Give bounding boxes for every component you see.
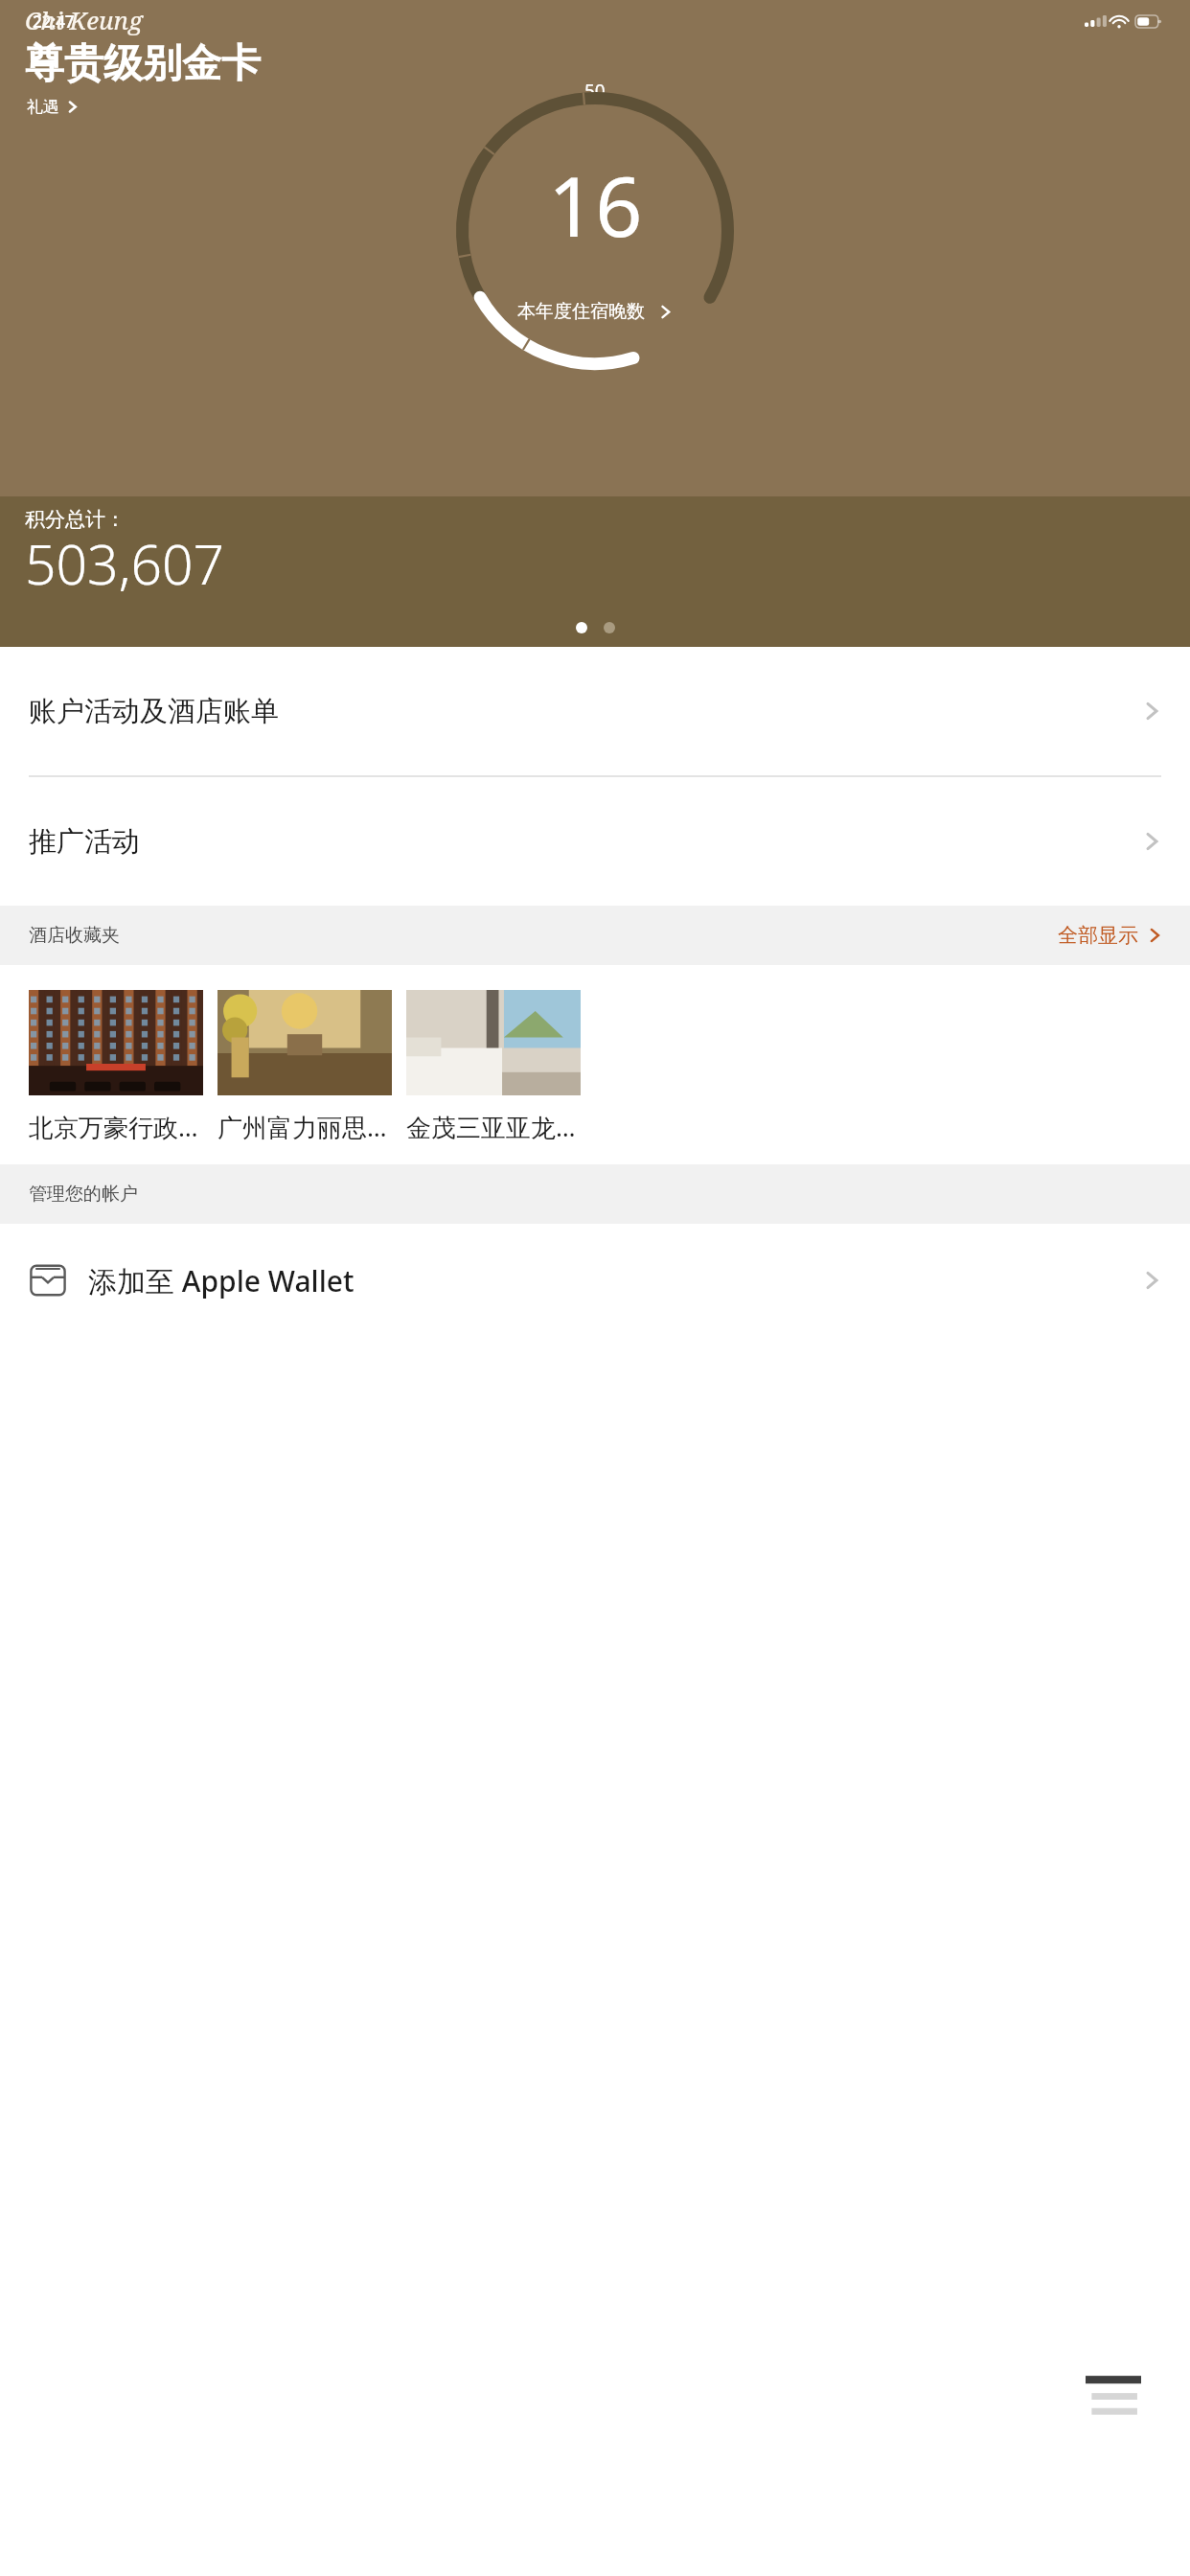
button[interactable]: 推广活动: [0, 777, 1190, 906]
button[interactable]: Menu: [1062, 2344, 1165, 2448]
staticText: 账户活动及酒店账单: [29, 694, 279, 729]
staticText: 积分总计：: [25, 507, 126, 532]
staticText: 金茂三亚亚龙…: [406, 1110, 576, 1144]
staticText: 广州富力丽思…: [217, 1110, 387, 1144]
staticText: 16: [548, 149, 643, 261]
button[interactable]: 添加至 Apple Wallet: [0, 1224, 1190, 1337]
staticText: 礼遇: [27, 97, 59, 117]
staticText: 北京万豪行政…: [29, 1110, 198, 1144]
button[interactable]: 北京万豪行政…: [29, 990, 203, 1144]
button[interactable]: 金茂三亚亚龙…: [406, 990, 581, 1144]
staticText: 推广活动: [29, 824, 140, 860]
staticText: 本年度住宿晚数: [517, 300, 645, 323]
staticText: 全部显示: [1058, 923, 1138, 948]
staticText: 尊贵级别金卡: [25, 39, 261, 89]
staticText: 503,607: [25, 526, 225, 601]
staticText: 酒店收藏夹: [29, 924, 120, 947]
staticText: 添加至 Apple Wallet: [88, 1261, 355, 1300]
button[interactable]: 礼遇: [25, 95, 80, 119]
staticText: 22:47: [33, 11, 75, 33]
staticText: Chi Keung: [25, 3, 143, 36]
staticText: 50: [584, 79, 606, 103]
button[interactable]: 广州富力丽思…: [217, 990, 392, 1144]
button[interactable]: 账户活动及酒店账单: [0, 647, 1190, 775]
staticText: 管理您的帐户: [29, 1183, 138, 1206]
button[interactable]: 全部显示: [1055, 920, 1165, 951]
button[interactable]: 本年度住宿晚数: [514, 296, 676, 327]
